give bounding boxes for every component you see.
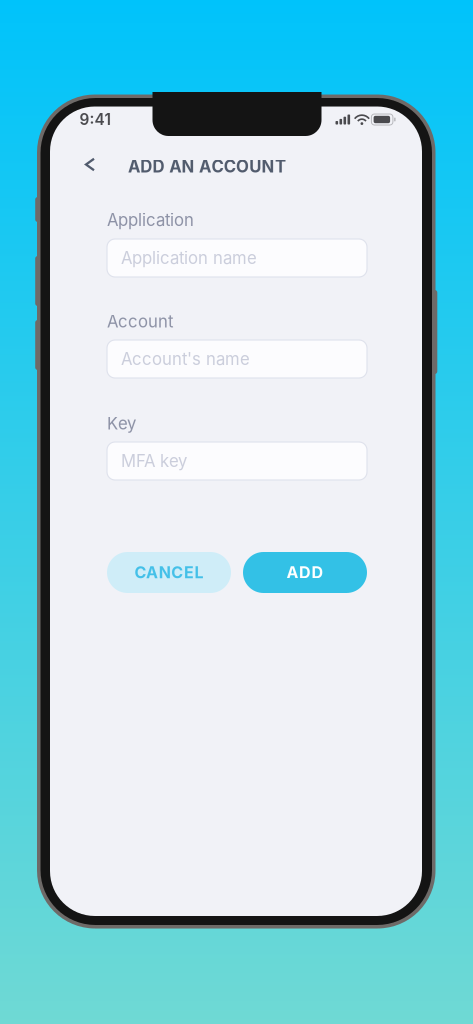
staticText: MFA key bbox=[121, 451, 187, 471]
button[interactable]: CANCEL bbox=[107, 552, 231, 593]
staticText: ADD bbox=[286, 563, 324, 582]
button[interactable]: Back bbox=[70, 143, 110, 185]
button[interactable]: ADD bbox=[243, 552, 367, 593]
staticText: CANCEL bbox=[134, 563, 203, 582]
staticText: 9:41 bbox=[79, 110, 110, 129]
staticText: Application bbox=[107, 210, 194, 230]
staticText: Account bbox=[107, 311, 173, 332]
staticText: Key bbox=[107, 413, 136, 434]
staticText: Account's name bbox=[121, 349, 250, 369]
staticText: Application name bbox=[121, 248, 257, 268]
staticText: ADD AN ACCOUNT bbox=[128, 156, 286, 177]
